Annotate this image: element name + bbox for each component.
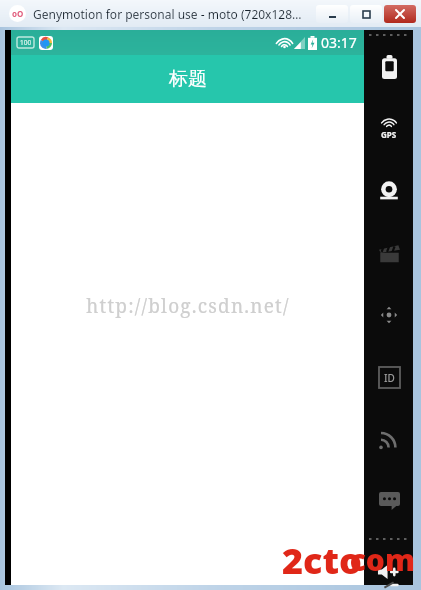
staticText: 2cto [282, 536, 362, 585]
other: Close [395, 9, 405, 19]
staticText: 100 [20, 38, 32, 47]
button[interactable]: GPS [369, 109, 409, 149]
button[interactable]: Window button [350, 5, 382, 23]
staticText: Genymotion for personal use - moto (720x… [33, 6, 302, 22]
button[interactable]: Close [384, 5, 416, 23]
button[interactable]: Window button [316, 5, 348, 23]
button[interactable]: Volume up [369, 559, 409, 585]
button[interactable]: Identifiers [369, 357, 409, 397]
button[interactable]: Camera [369, 171, 409, 211]
staticText: 标题 [169, 67, 207, 91]
staticText: http://blog.csdn.net/ [86, 293, 290, 319]
button[interactable]: Video recording [369, 233, 409, 273]
button[interactable]: SMS [369, 481, 409, 521]
staticText: 03:17 [321, 33, 357, 52]
staticText: ID [384, 371, 395, 385]
button[interactable]: Battery [369, 47, 409, 87]
button[interactable]: Network [369, 419, 409, 459]
staticText: oO [12, 8, 24, 19]
button[interactable]: Accelerometer [369, 295, 409, 335]
staticText: .com [341, 539, 415, 580]
staticText: GPS [381, 129, 397, 140]
